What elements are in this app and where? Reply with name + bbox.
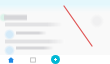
button[interactable] [0, 0, 110, 64]
button[interactable]: Home [0, 55, 22, 64]
button[interactable]: Library [22, 55, 44, 64]
button[interactable]: Add [44, 55, 66, 64]
